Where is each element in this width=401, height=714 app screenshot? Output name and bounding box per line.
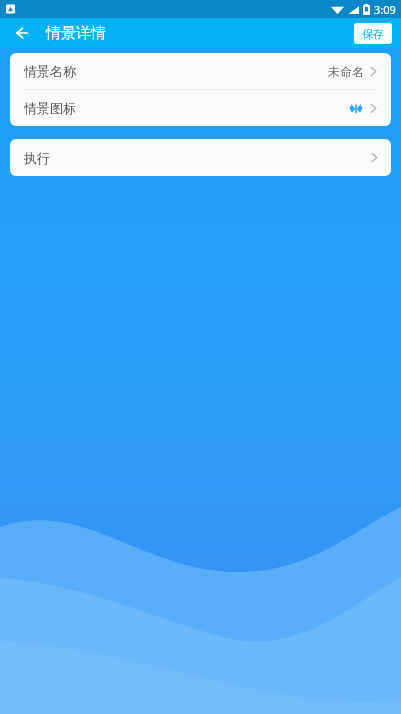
staticText: 执行 [24, 150, 50, 166]
staticText: 情景详情 [46, 24, 106, 43]
staticText: 情景名称 [24, 63, 76, 79]
staticText: 情景图标 [24, 100, 76, 116]
button[interactable]: 保存 [354, 23, 392, 44]
button[interactable]: 情景名称 [10, 53, 391, 89]
staticText: 保存 [362, 27, 384, 41]
staticText: 未命名 [328, 64, 364, 79]
other: Scene icon [348, 103, 364, 114]
button[interactable]: 情景图标 [10, 90, 391, 126]
button[interactable]: Back [8, 20, 34, 46]
button[interactable]: 执行 [10, 139, 391, 176]
staticText: 3:09 [374, 2, 396, 17]
